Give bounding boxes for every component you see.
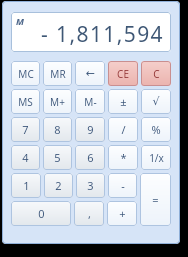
staticText: 1 <box>23 178 30 193</box>
staticText: CE <box>117 67 129 81</box>
staticText: MR <box>50 67 66 81</box>
staticText: M+ <box>50 95 65 109</box>
button[interactable]: * <box>108 145 138 170</box>
button[interactable]: 1/x <box>141 145 171 170</box>
button[interactable]: M+ <box>43 89 72 114</box>
staticText: 6 <box>87 150 94 165</box>
button[interactable]: 5 <box>43 145 72 170</box>
button[interactable]: MS <box>11 89 40 114</box>
staticText: √ <box>152 95 160 108</box>
button[interactable]: 1 <box>11 173 41 198</box>
button[interactable]: 6 <box>75 145 105 170</box>
button[interactable]: ← <box>75 61 105 86</box>
staticText: % <box>151 122 161 137</box>
button[interactable]: , <box>74 201 104 226</box>
button[interactable]: 4 <box>11 145 40 170</box>
button[interactable]: C <box>141 61 171 86</box>
button[interactable]: 8 <box>43 117 72 142</box>
button[interactable]: % <box>141 117 171 142</box>
staticText: M <box>16 15 24 27</box>
staticText: , <box>88 206 91 221</box>
staticText: 1/x <box>149 151 164 165</box>
button[interactable]: M- <box>75 89 105 114</box>
staticText: 0 <box>38 206 45 221</box>
staticText: ± <box>120 94 127 109</box>
staticText: 5 <box>54 150 61 165</box>
button[interactable]: 9 <box>75 117 105 142</box>
button[interactable]: 3 <box>76 173 105 198</box>
button[interactable]: MR <box>43 61 72 86</box>
button[interactable]: 0 <box>11 201 71 226</box>
staticText: / <box>121 122 126 137</box>
staticText: 7 <box>22 122 29 137</box>
staticText: + <box>119 206 126 221</box>
staticText: - <box>121 178 125 193</box>
staticText: - 1,811,594 <box>41 20 164 49</box>
staticText: = <box>152 192 159 207</box>
button[interactable]: - <box>108 173 137 198</box>
staticText: 2 <box>55 178 62 193</box>
staticText: MS <box>18 95 33 109</box>
staticText: ← <box>85 67 95 80</box>
staticText: 9 <box>87 122 94 137</box>
button[interactable]: CE <box>108 61 138 86</box>
staticText: C <box>153 67 160 81</box>
staticText: 4 <box>22 150 29 165</box>
button[interactable]: √ <box>141 89 171 114</box>
staticText: * <box>120 150 127 165</box>
staticText: 8 <box>54 122 61 137</box>
button[interactable]: / <box>108 117 138 142</box>
staticText: M- <box>84 95 97 109</box>
button[interactable]: ± <box>108 89 138 114</box>
button[interactable]: 2 <box>44 173 73 198</box>
button[interactable]: + <box>107 201 137 226</box>
staticText: 3 <box>87 178 94 193</box>
button[interactable]: 7 <box>11 117 40 142</box>
staticText: MC <box>18 67 34 81</box>
button[interactable]: MC <box>11 61 40 86</box>
button[interactable]: = <box>140 173 171 226</box>
